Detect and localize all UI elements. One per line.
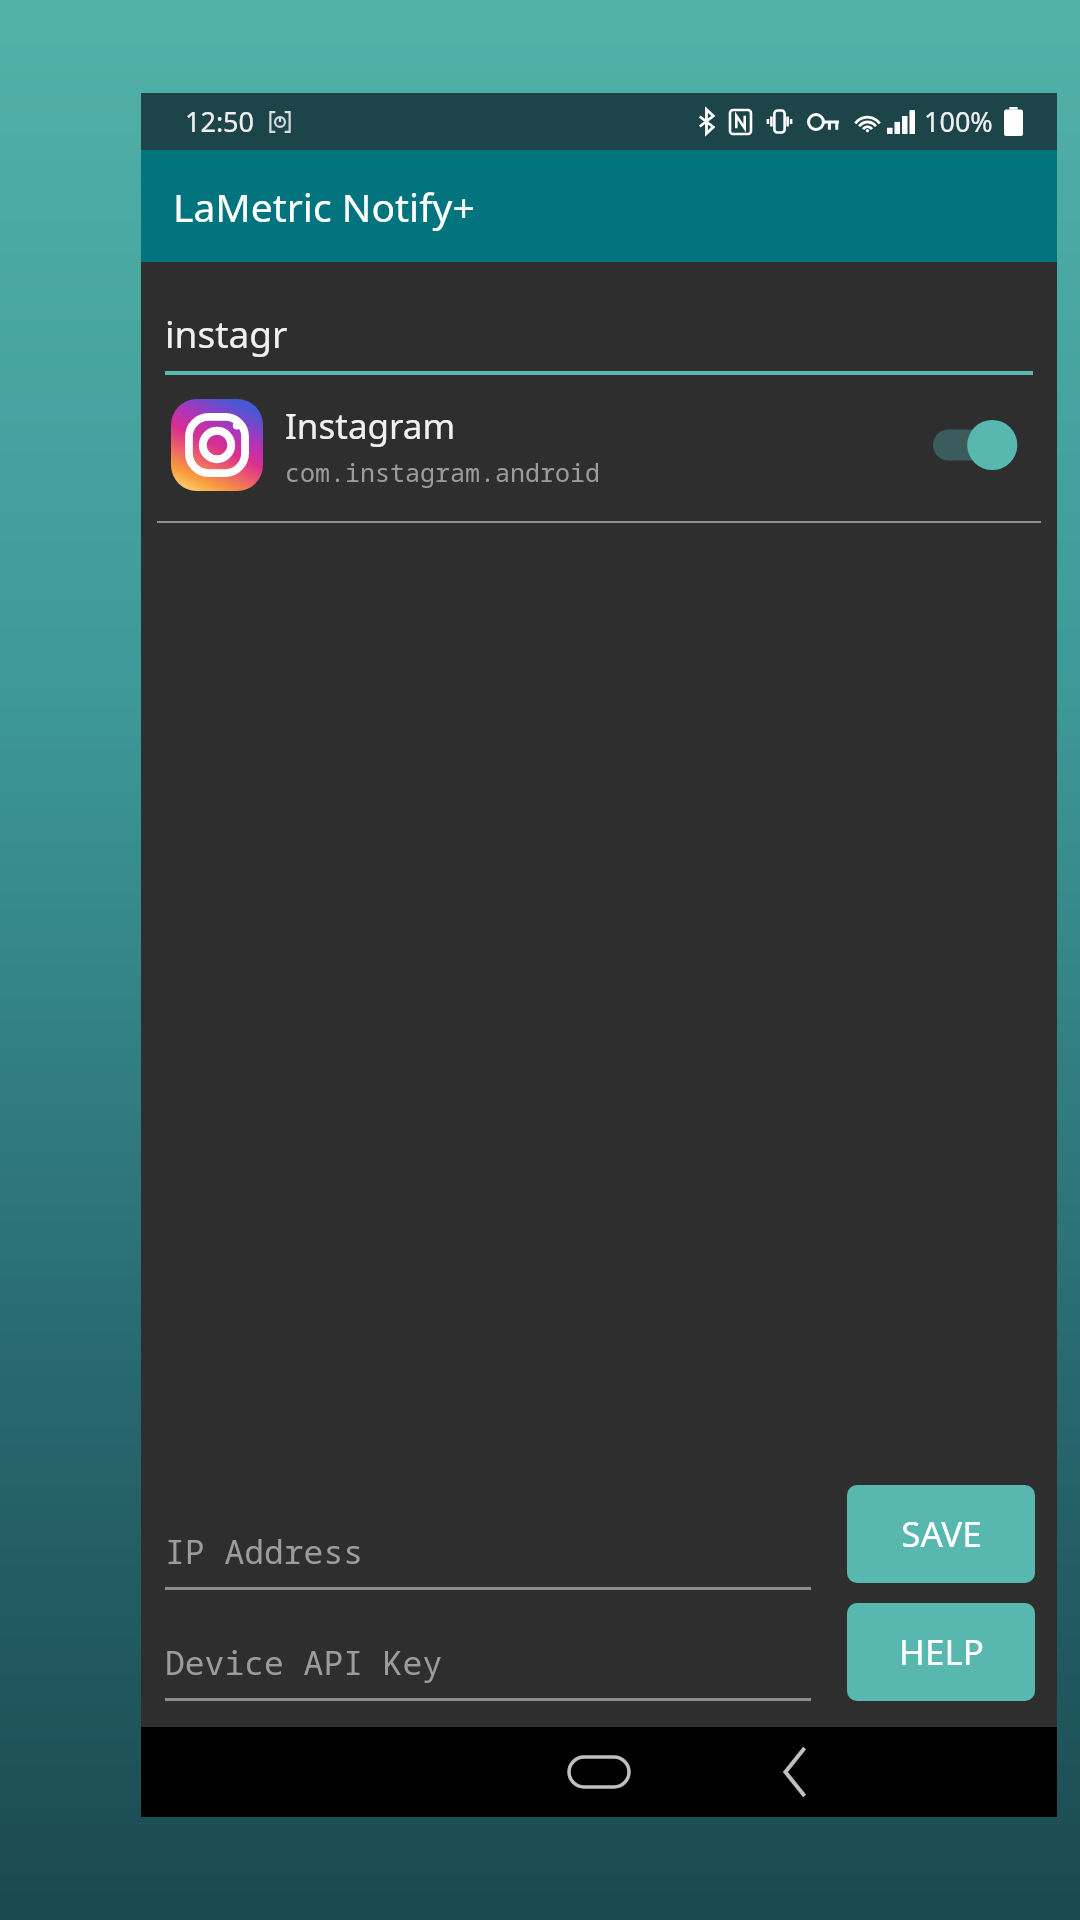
staticText: SAVE xyxy=(901,1510,982,1558)
staticText: IP Address xyxy=(165,1529,364,1574)
staticText: Device API Key xyxy=(165,1640,443,1685)
staticText: com.instagram.android xyxy=(285,455,601,489)
button[interactable]: Back xyxy=(750,1736,840,1808)
staticText: 12:50 xyxy=(185,103,255,140)
staticText: 100% xyxy=(924,103,993,140)
button[interactable]: Instagram xyxy=(141,385,1057,505)
staticText: LaMetric Notify+ xyxy=(173,180,475,233)
button[interactable]: Device API Key xyxy=(165,1640,811,1701)
button[interactable]: SAVE xyxy=(847,1485,1035,1583)
button[interactable]: Home xyxy=(549,1740,649,1804)
button[interactable]: Toggle Instagram notifications xyxy=(933,414,1031,476)
button[interactable]: HELP xyxy=(847,1603,1035,1701)
button[interactable]: IP Address xyxy=(165,1529,811,1590)
button[interactable]: instagr xyxy=(141,262,1057,375)
staticText: HELP xyxy=(899,1628,984,1676)
staticText: Instagram xyxy=(285,402,456,450)
staticText: instagr xyxy=(165,308,288,358)
